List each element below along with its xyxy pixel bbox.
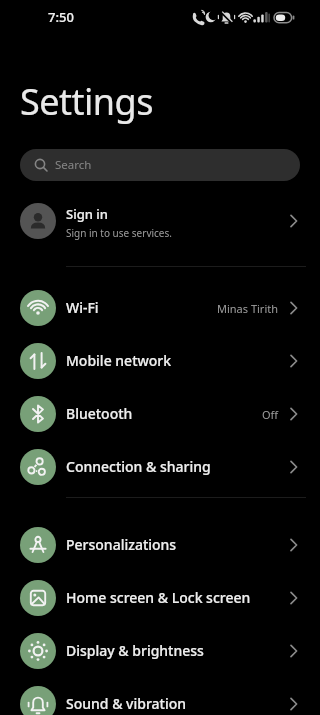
staticText: 7:50 bbox=[48, 8, 74, 26]
button[interactable]: Connection & sharing bbox=[0, 440, 320, 493]
staticText: Connection & sharing bbox=[66, 457, 211, 476]
staticText: Search bbox=[55, 157, 92, 173]
staticText: Settings bbox=[20, 77, 153, 126]
staticText: Bluetooth bbox=[66, 404, 133, 423]
staticText: Off bbox=[262, 407, 279, 422]
button[interactable]: Search bbox=[20, 149, 300, 181]
button[interactable]: Sign in bbox=[0, 197, 320, 245]
button[interactable]: Mobile network bbox=[0, 334, 320, 387]
staticText: Mobile network bbox=[66, 351, 172, 370]
staticText: Display & brightness bbox=[66, 641, 204, 660]
button[interactable]: Sound & vibration bbox=[0, 677, 320, 715]
button[interactable]: Bluetooth bbox=[0, 387, 320, 440]
staticText: Personalizations bbox=[66, 535, 177, 554]
staticText: Sign in bbox=[66, 205, 108, 223]
staticText: Wi-Fi bbox=[66, 298, 99, 317]
button[interactable]: Personalizations bbox=[0, 518, 320, 571]
staticText: Minas Tirith bbox=[217, 301, 279, 316]
button[interactable]: Wi-Fi bbox=[0, 281, 320, 334]
staticText: Sound & vibration bbox=[66, 694, 187, 713]
staticText: Sign in to use services. bbox=[66, 226, 172, 240]
button[interactable]: Display & brightness bbox=[0, 624, 320, 677]
staticText: Home screen & Lock screen bbox=[66, 588, 251, 607]
button[interactable]: Home screen & Lock screen bbox=[0, 571, 320, 624]
